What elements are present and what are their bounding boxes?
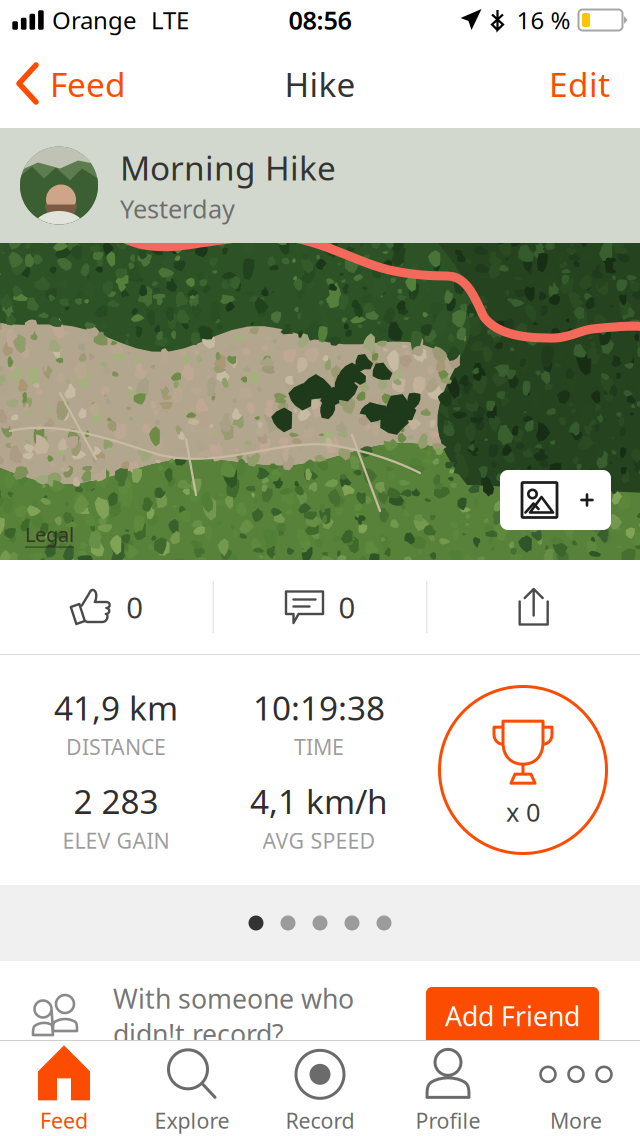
staticText: AVG SPEED [262, 826, 375, 855]
button[interactable]: Add Friend [426, 987, 599, 1045]
staticText: Explore [154, 1106, 229, 1135]
staticText: Record [285, 1106, 354, 1135]
staticText: DISTANCE [66, 733, 166, 761]
staticText: 2 283 [73, 779, 158, 823]
staticText: 08:56 [288, 3, 351, 37]
staticText: Edit [549, 62, 610, 106]
staticText: 16 % [516, 4, 570, 36]
button[interactable]: Profile [384, 1040, 512, 1136]
staticText: More [550, 1106, 602, 1135]
staticText: Legal [25, 521, 74, 548]
staticText: ELEV GAIN [62, 826, 169, 855]
staticText: Add Friend [445, 998, 580, 1034]
staticText: Feed [40, 1106, 88, 1135]
staticText: Yesterday [120, 192, 235, 225]
staticText: Morning Hike [120, 145, 336, 190]
staticText: 10:19:38 [253, 685, 385, 730]
button[interactable]: Share [427, 560, 640, 654]
staticText: 0 [126, 587, 143, 626]
staticText: Profile [415, 1106, 480, 1135]
button[interactable]: Record [256, 1040, 384, 1136]
button[interactable]: Explore [128, 1040, 256, 1136]
staticText: Orange [52, 4, 137, 36]
button[interactable]: More [512, 1040, 640, 1136]
staticText: With someone who didn!t record? [113, 981, 354, 1051]
button[interactable]: 0 [214, 560, 426, 654]
staticText: LTE [151, 4, 189, 36]
staticText: x 0 [506, 795, 540, 829]
staticText: Hike [284, 62, 355, 106]
button[interactable]: 0 [0, 560, 213, 654]
button[interactable]: Achievements [406, 685, 640, 855]
button[interactable]: Feed [0, 1040, 128, 1136]
button[interactable]: Edit [519, 40, 640, 128]
button[interactable]: Feed [0, 40, 138, 128]
staticText: 41,9 km [54, 685, 178, 730]
button[interactable]: Add photo [500, 470, 611, 530]
staticText: TIME [294, 733, 344, 761]
staticText: 0 [338, 587, 355, 626]
staticText: Feed [50, 62, 126, 106]
staticText: 4,1 km/h [250, 779, 388, 823]
